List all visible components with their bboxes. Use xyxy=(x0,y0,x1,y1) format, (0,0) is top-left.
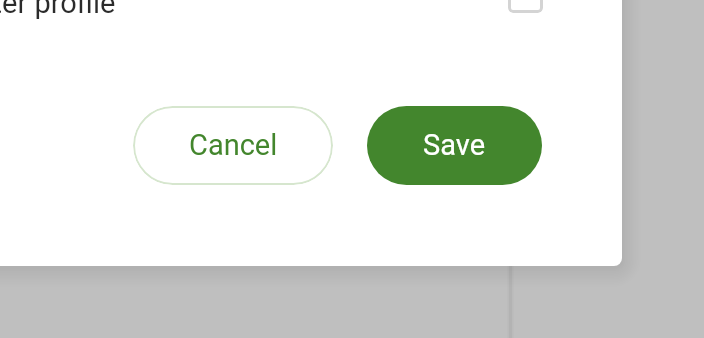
staticText: Cancel xyxy=(189,128,278,162)
staticText: Register profile xyxy=(0,0,116,20)
button[interactable]: Cancel xyxy=(133,106,333,185)
button[interactable]: Save xyxy=(367,106,542,185)
button[interactable]: Toggle option xyxy=(508,0,543,13)
staticText: Save xyxy=(423,128,486,162)
